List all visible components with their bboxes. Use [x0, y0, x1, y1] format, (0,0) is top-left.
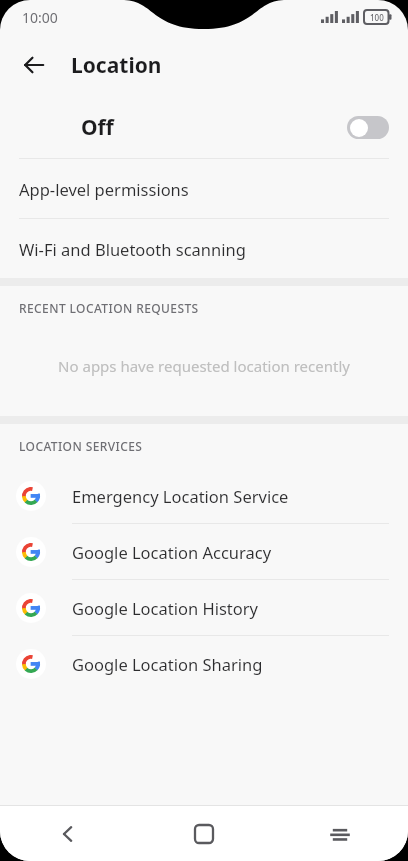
- staticText: LOCATION SERVICES: [19, 438, 143, 454]
- staticText: Location: [71, 51, 162, 80]
- button[interactable]: Google Location Accuracy: [0, 524, 408, 579]
- button[interactable]: Wi-Fi and Bluetooth scanning: [0, 219, 408, 278]
- button[interactable]: Back: [13, 44, 55, 86]
- staticText: No apps have requested location recently: [58, 356, 350, 376]
- button[interactable]: Google Location Sharing: [0, 636, 408, 691]
- staticText: RECENT LOCATION REQUESTS: [19, 300, 199, 316]
- button[interactable]: Recent apps: [272, 806, 408, 861]
- staticText: App-level permissions: [19, 178, 189, 200]
- staticText: 100: [370, 12, 384, 23]
- staticText: Google Location Sharing: [72, 653, 263, 675]
- staticText: Google Location History: [72, 597, 259, 619]
- staticText: Google Location Accuracy: [72, 541, 272, 563]
- button[interactable]: Emergency Location Service: [0, 468, 408, 523]
- staticText: Emergency Location Service: [72, 485, 289, 507]
- staticText: 10:00: [22, 8, 58, 27]
- button[interactable]: Home: [136, 806, 272, 861]
- staticText: Wi-Fi and Bluetooth scanning: [19, 238, 246, 260]
- staticText: Off: [81, 113, 114, 142]
- button[interactable]: Off: [0, 96, 408, 158]
- button[interactable]: Location toggle, off: [347, 116, 389, 139]
- button[interactable]: App-level permissions: [0, 159, 408, 218]
- button[interactable]: Google Location History: [0, 580, 408, 635]
- button[interactable]: Back: [0, 806, 136, 861]
